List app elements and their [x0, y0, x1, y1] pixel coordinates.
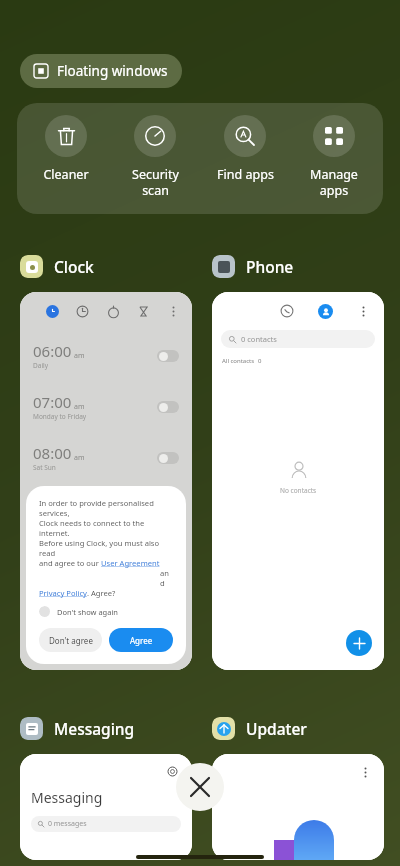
staticText: Updater: [246, 718, 307, 739]
button[interactable]: Find apps: [204, 103, 286, 183]
staticText: 08:00: [33, 443, 72, 463]
button[interactable]: Phone: [212, 255, 300, 278]
staticText: 0 contacts: [241, 334, 277, 344]
staticText: Clock: [54, 256, 94, 277]
staticText: 07:00: [33, 392, 72, 412]
staticText: 0: [258, 357, 262, 365]
staticText: Find apps: [217, 166, 274, 183]
staticText: Phone: [246, 256, 294, 277]
button[interactable]: Alarm toggle: [157, 401, 179, 413]
button[interactable]: Don't show again: [39, 606, 173, 617]
staticText: Monday to Friday: [33, 412, 87, 421]
staticText: Messaging: [54, 718, 135, 739]
button[interactable]: [212, 754, 384, 860]
button[interactable]: User Agreement: [101, 558, 160, 568]
staticText: am: [74, 453, 85, 463]
staticText: Cleaner: [43, 166, 89, 183]
button[interactable]: Close: [176, 763, 224, 811]
button[interactable]: Add contact: [346, 630, 372, 656]
button[interactable]: 0 messages: [31, 816, 181, 832]
staticText: In order to provide personalised service…: [39, 498, 173, 518]
staticText: Before using Clock, you must also read: [39, 538, 173, 558]
staticText: No contacts: [280, 486, 317, 495]
staticText: Manage apps: [310, 166, 358, 198]
staticText: All contacts: [222, 357, 255, 365]
button[interactable]: Alarm toggle: [157, 452, 179, 464]
staticText: Sat Sun: [33, 463, 56, 472]
button[interactable]: Messaging: [20, 717, 141, 740]
staticText: Messaging: [31, 788, 103, 807]
button[interactable]: Don't agree: [39, 628, 102, 652]
button[interactable]: 0 contacts: [212, 292, 384, 670]
staticText: Agree: [130, 635, 153, 646]
staticText: am: [74, 351, 85, 361]
staticText: Daily: [33, 361, 49, 370]
staticText: and agree to our: [39, 558, 101, 568]
button[interactable]: Security scan: [114, 103, 196, 198]
button[interactable]: Floating windows: [20, 54, 182, 88]
staticText: 06:00: [33, 341, 72, 361]
staticText: and: [160, 558, 173, 588]
button[interactable]: Alarm toggle: [157, 350, 179, 362]
button[interactable]: Agree: [109, 628, 173, 652]
button[interactable]: 06:00: [20, 292, 192, 670]
staticText: . Agree?: [87, 588, 116, 598]
button[interactable]: Cleaner: [25, 103, 107, 183]
staticText: am: [74, 402, 85, 412]
staticText: Don't agree: [49, 635, 93, 646]
staticText: Don't show again: [57, 607, 118, 617]
button[interactable]: Manage apps: [293, 103, 375, 198]
button[interactable]: Updater: [212, 717, 313, 740]
button[interactable]: Privacy Policy: [39, 588, 87, 598]
staticText: Clock needs to connect to the internet.: [39, 518, 173, 538]
button[interactable]: Clock: [20, 255, 100, 278]
staticText: Security scan: [132, 166, 179, 198]
staticText: Floating windows: [57, 62, 168, 80]
staticText: 0 messages: [48, 819, 87, 829]
button[interactable]: Messaging: [20, 754, 192, 860]
button[interactable]: 0 contacts: [221, 330, 375, 348]
